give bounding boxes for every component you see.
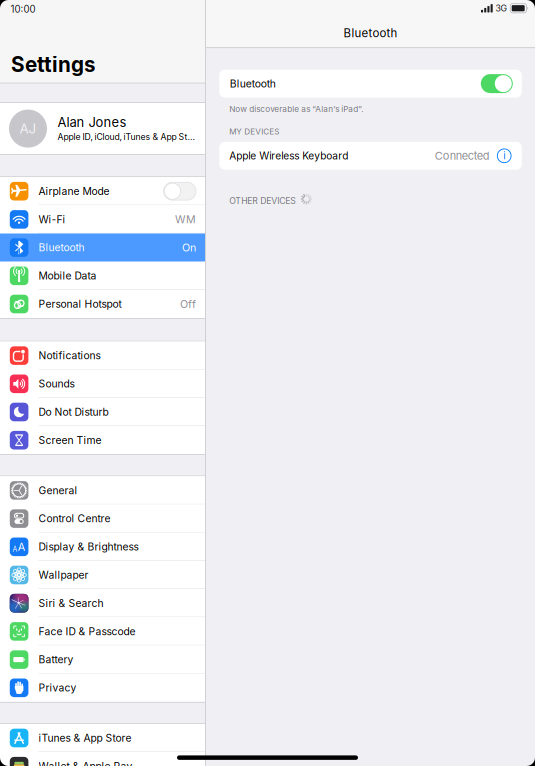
staticText: Mobile Data <box>38 269 96 282</box>
staticText: AJ <box>19 120 36 137</box>
button[interactable]: Airplane Mode <box>0 177 205 205</box>
staticText: Now discoverable as “Alan’s iPad”. <box>229 104 363 114</box>
staticText: Notifications <box>38 349 100 362</box>
staticText: iTunes & App Store <box>38 732 131 744</box>
staticText: 3G <box>495 3 507 13</box>
staticText: Airplane Mode <box>38 185 109 197</box>
button[interactable]: Mobile Data <box>0 262 205 290</box>
staticText: Connected <box>435 149 490 162</box>
staticText: MY DEVICES <box>229 126 279 136</box>
button[interactable]: Face ID & Passcode <box>0 617 205 645</box>
staticText: Bluetooth <box>38 241 84 254</box>
staticText: Apple Wireless Keyboard <box>229 150 348 162</box>
staticText: Siri & Search <box>38 597 103 609</box>
staticText: Bluetooth <box>343 26 397 40</box>
button[interactable]: Bluetooth <box>219 70 522 97</box>
button[interactable]: iTunes & App Store <box>0 724 205 752</box>
staticText: Wi-Fi <box>38 213 65 226</box>
staticText: Display & Brightness <box>38 540 138 553</box>
button[interactable]: Wi-Fi <box>0 205 205 233</box>
button[interactable]: Wallet & Apple Pay <box>0 752 205 766</box>
button[interactable]: Control Centre <box>0 504 205 533</box>
staticText: Wallet & Apple Pay <box>38 760 132 766</box>
staticText: Do Not Disturb <box>38 406 108 418</box>
button[interactable]: Sounds <box>0 370 205 398</box>
staticText: WM <box>175 213 196 226</box>
button[interactable]: Bluetooth <box>0 233 205 262</box>
staticText: On <box>182 241 196 254</box>
staticText: Personal Hotspot <box>38 298 121 310</box>
staticText: Settings <box>11 52 96 77</box>
staticText: i <box>503 149 505 162</box>
staticText: Apple ID, iCloud, iTunes & App St… <box>57 131 194 142</box>
button[interactable]: Notifications <box>0 341 205 370</box>
button[interactable]: Do Not Disturb <box>0 398 205 426</box>
staticText: Screen Time <box>38 434 101 446</box>
staticText: Battery <box>38 653 73 666</box>
button[interactable]: Apple Wireless Keyboard <box>219 142 522 170</box>
button[interactable]: Privacy <box>0 674 205 702</box>
button[interactable]: A <box>0 533 205 561</box>
button[interactable]: Screen Time <box>0 426 205 454</box>
staticText: Sounds <box>38 377 74 390</box>
staticText: Off <box>180 297 196 310</box>
button[interactable]: General <box>0 476 205 504</box>
staticText: Face ID & Passcode <box>38 625 135 638</box>
staticText: Wallpaper <box>38 569 88 581</box>
button[interactable]: Wallpaper <box>0 561 205 589</box>
button[interactable]: AJ <box>0 103 205 154</box>
staticText: A <box>18 540 26 553</box>
staticText: 10:00 <box>10 3 35 15</box>
staticText: Control Centre <box>38 512 110 525</box>
staticText: Bluetooth <box>230 77 276 90</box>
staticText: Alan Jones <box>57 114 126 130</box>
button[interactable]: Battery <box>0 645 205 674</box>
button[interactable]: Personal Hotspot <box>0 290 205 318</box>
staticText: A <box>12 545 17 553</box>
button[interactable]: Siri & Search <box>0 589 205 617</box>
staticText: General <box>38 484 77 497</box>
staticText: OTHER DEVICES <box>229 195 296 206</box>
staticText: Privacy <box>38 681 76 694</box>
